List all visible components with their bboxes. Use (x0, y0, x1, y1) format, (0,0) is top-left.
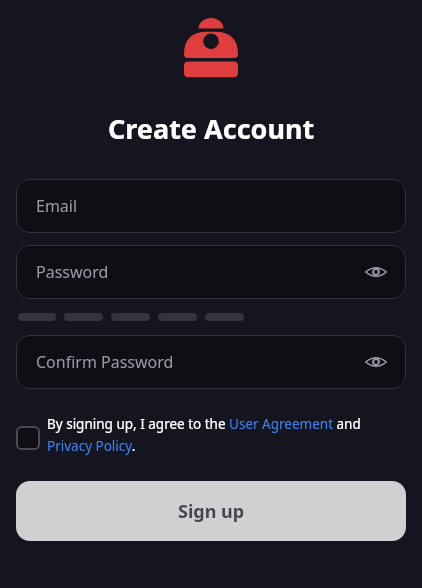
other: Agree to terms checkbox (16, 426, 40, 450)
staticText: Password (36, 261, 109, 283)
button[interactable]: Sign up (16, 481, 406, 541)
button[interactable]: Agree to terms checkbox (16, 415, 404, 455)
button[interactable]: Show password (362, 258, 390, 286)
button[interactable]: Confirm Password (16, 335, 406, 389)
staticText: By signing up, I agree to the User Agree… (47, 415, 404, 455)
staticText: Sign up (178, 499, 245, 524)
staticText: Email (36, 195, 78, 217)
button[interactable]: Email (16, 179, 406, 233)
staticText: Create Account (108, 110, 315, 147)
staticText: Confirm Password (36, 351, 174, 373)
button[interactable]: Show password (362, 348, 390, 376)
button[interactable]: Password (16, 245, 406, 299)
